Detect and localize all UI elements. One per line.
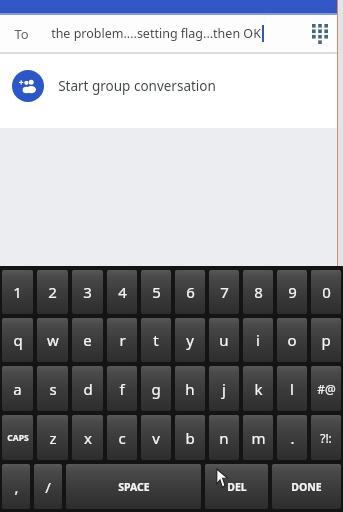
button[interactable]: Dialpad <box>303 17 337 51</box>
staticText: #@ <box>317 381 336 397</box>
staticText: 0 <box>322 282 331 302</box>
staticText: SPACE <box>118 480 150 494</box>
button[interactable]: 0 <box>311 270 341 314</box>
staticText: m <box>251 428 266 448</box>
button[interactable]: j <box>209 366 239 411</box>
staticText: b <box>185 428 195 448</box>
button[interactable]: Start group conversation <box>0 54 343 118</box>
button[interactable]: m <box>243 415 273 460</box>
staticText: y <box>186 330 194 350</box>
button[interactable]: d <box>72 366 103 411</box>
staticText: g <box>151 379 161 399</box>
button[interactable]: To <box>0 15 343 52</box>
staticText: Start group conversation <box>58 77 216 95</box>
button[interactable]: u <box>209 318 239 362</box>
staticText: , <box>14 477 19 497</box>
staticText: p <box>321 330 331 350</box>
staticText: DEL <box>227 480 247 494</box>
button[interactable]: c <box>107 415 137 460</box>
button[interactable]: y <box>175 318 205 362</box>
button[interactable]: l <box>277 366 307 411</box>
staticText: 6 <box>186 282 195 302</box>
staticText: z <box>49 428 57 448</box>
staticText: c <box>118 428 126 448</box>
staticText: the problem....setting flag...then OK <box>51 25 261 42</box>
staticText: j <box>222 379 226 399</box>
button[interactable]: 4 <box>107 270 137 314</box>
staticText: 5 <box>152 282 161 302</box>
staticText: 4 <box>118 282 127 302</box>
button[interactable]: k <box>243 366 273 411</box>
button[interactable]: 1 <box>2 270 33 314</box>
staticText: o <box>287 330 297 350</box>
staticText: 7 <box>220 282 229 302</box>
button[interactable]: z <box>37 415 68 460</box>
staticText: l <box>290 379 294 399</box>
button[interactable]: 8 <box>243 270 273 314</box>
button[interactable]: o <box>277 318 307 362</box>
button[interactable]: ?!: <box>311 415 341 460</box>
button[interactable]: b <box>175 415 205 460</box>
staticText: 3 <box>83 282 92 302</box>
staticText: t <box>153 330 159 350</box>
button[interactable]: q <box>2 318 33 362</box>
button[interactable]: 5 <box>141 270 171 314</box>
button[interactable]: x <box>72 415 103 460</box>
staticText: 9 <box>288 282 297 302</box>
staticText: . <box>290 428 295 448</box>
button[interactable]: CAPS <box>2 415 33 460</box>
staticText: h <box>185 379 195 399</box>
button[interactable]: SPACE <box>66 464 201 509</box>
button[interactable]: a <box>2 366 33 411</box>
button[interactable]: 3 <box>72 270 103 314</box>
staticText: w <box>47 330 59 350</box>
staticText: 8 <box>254 282 263 302</box>
button[interactable]: e <box>72 318 103 362</box>
staticText: a <box>13 379 22 399</box>
staticText: To <box>14 25 29 43</box>
staticText: v <box>152 428 160 448</box>
staticText: r <box>119 330 126 350</box>
button[interactable]: n <box>209 415 239 460</box>
staticText: n <box>219 428 229 448</box>
button[interactable]: r <box>107 318 137 362</box>
staticText: d <box>83 379 93 399</box>
button[interactable]: / <box>34 464 62 509</box>
staticText: u <box>219 330 229 350</box>
staticText: CAPS <box>7 432 29 444</box>
staticText: e <box>83 330 92 350</box>
button[interactable]: . <box>277 415 307 460</box>
staticText: 1 <box>13 282 22 302</box>
button[interactable]: #@ <box>311 366 341 411</box>
staticText: 2 <box>48 282 57 302</box>
button[interactable]: 2 <box>37 270 68 314</box>
staticText: f <box>119 379 125 399</box>
staticText: DONE <box>291 480 322 494</box>
staticText: s <box>49 379 57 399</box>
button[interactable]: h <box>175 366 205 411</box>
button[interactable]: w <box>37 318 68 362</box>
staticText: / <box>45 477 51 497</box>
button[interactable]: f <box>107 366 137 411</box>
button[interactable]: 9 <box>277 270 307 314</box>
button[interactable]: p <box>311 318 341 362</box>
button[interactable]: DEL <box>205 464 268 509</box>
button[interactable]: v <box>141 415 171 460</box>
button[interactable]: t <box>141 318 171 362</box>
staticText: ?!: <box>320 430 332 446</box>
button[interactable]: g <box>141 366 171 411</box>
staticText: x <box>84 428 92 448</box>
button[interactable]: s <box>37 366 68 411</box>
button[interactable]: DONE <box>272 464 341 509</box>
button[interactable]: , <box>2 464 30 509</box>
button[interactable]: 6 <box>175 270 205 314</box>
staticText: i <box>256 330 260 350</box>
staticText: q <box>13 330 23 350</box>
button[interactable]: i <box>243 318 273 362</box>
staticText: k <box>254 379 263 399</box>
button[interactable]: 7 <box>209 270 239 314</box>
